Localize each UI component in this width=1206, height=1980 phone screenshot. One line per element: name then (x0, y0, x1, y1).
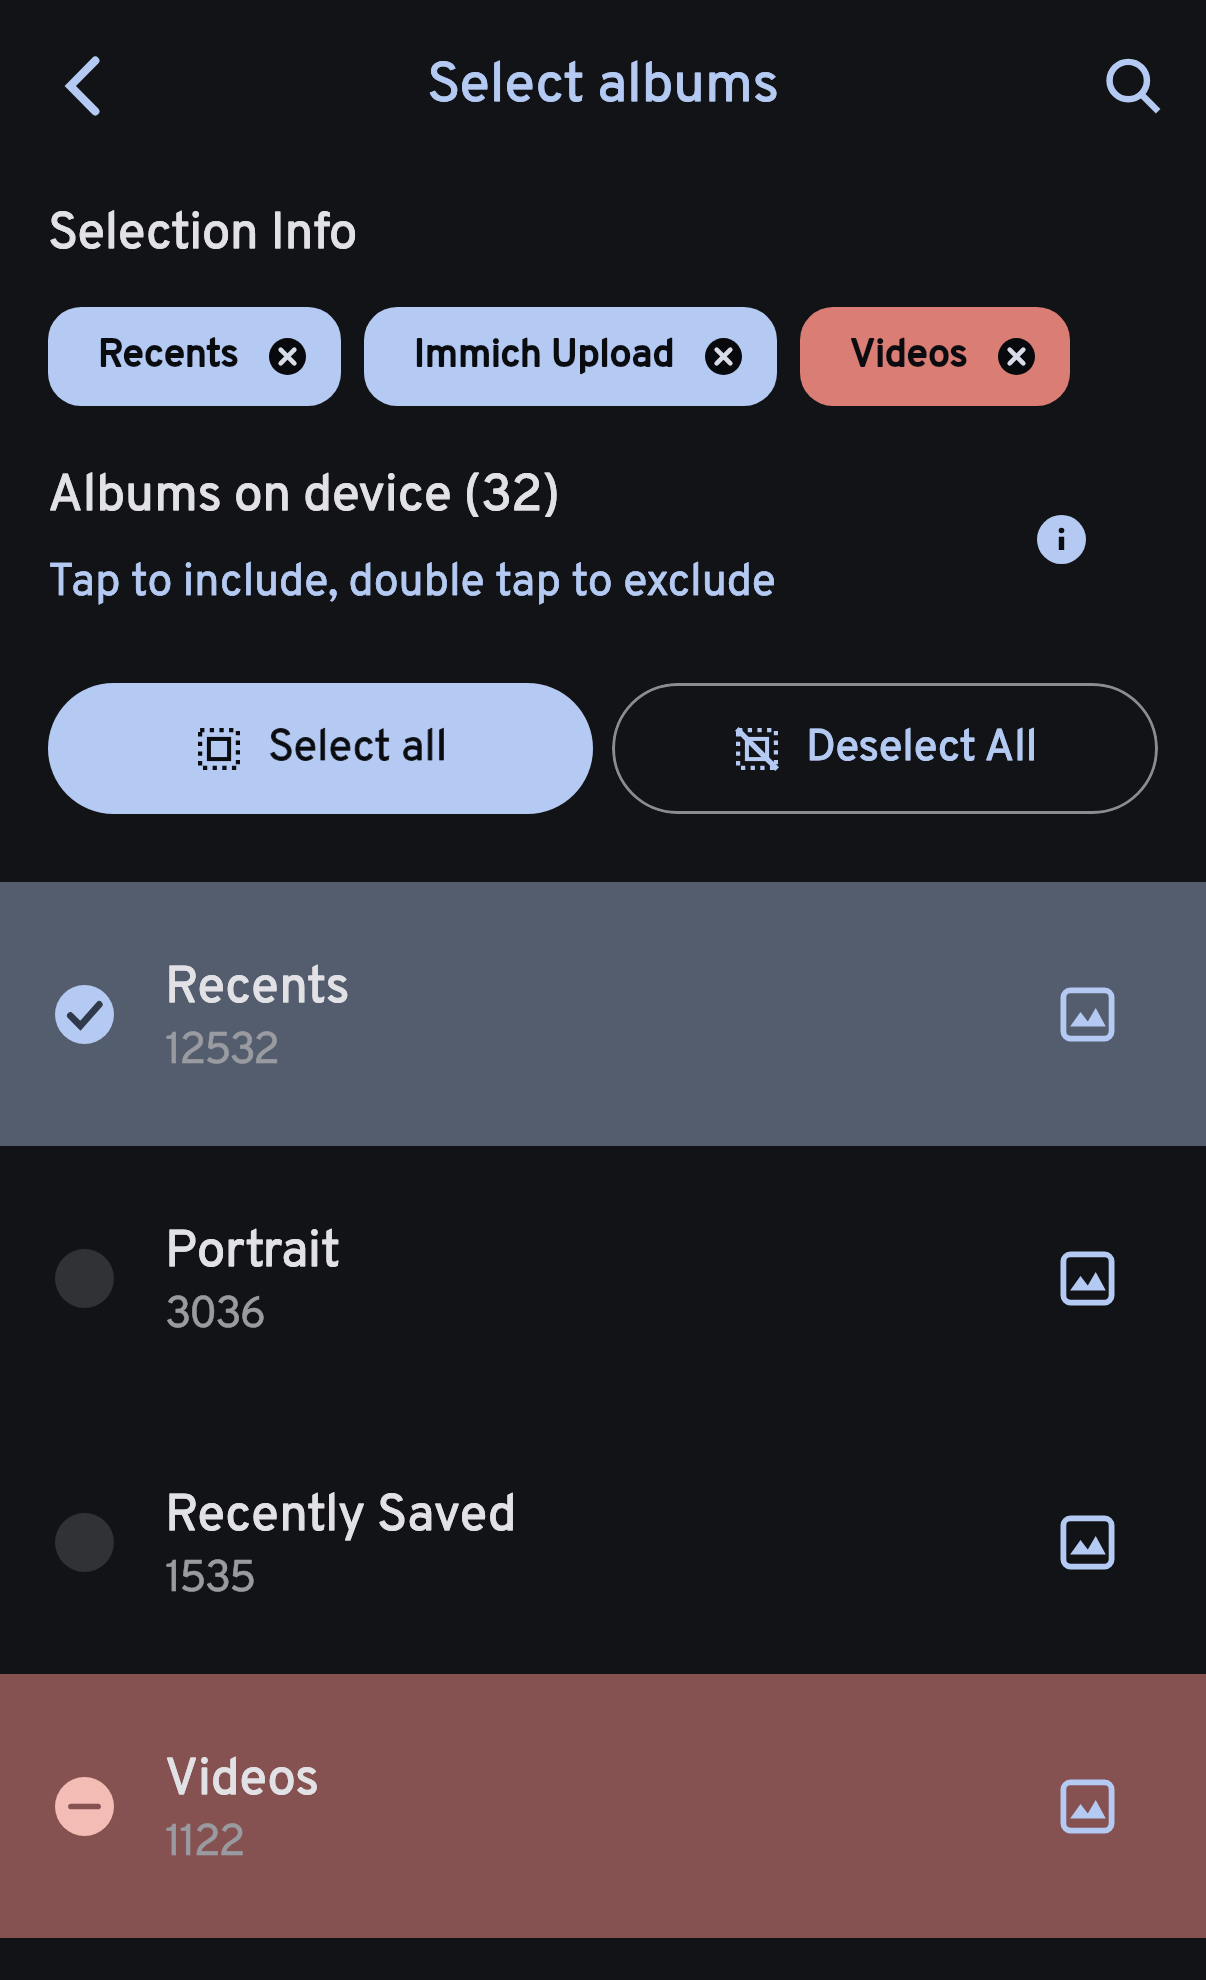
staticText: Recents (165, 957, 350, 1021)
button[interactable]: Recents (0, 882, 1206, 1146)
staticText: Portrait (165, 1221, 341, 1285)
button[interactable]: Videos (800, 307, 1070, 406)
button[interactable]: Select all (48, 683, 593, 814)
staticText: 3036 (165, 1288, 264, 1344)
staticText: Recents (98, 332, 239, 381)
staticText: Select all (268, 721, 448, 776)
staticText: Albums on device (32) (48, 465, 561, 530)
staticText: Videos (165, 1749, 320, 1813)
staticText: Immich Upload (414, 332, 675, 381)
staticText: 1535 (165, 1552, 255, 1608)
button[interactable]: Portrait (0, 1146, 1206, 1410)
button[interactable]: Back (12, 14, 156, 158)
staticText: Deselect All (806, 721, 1038, 776)
staticText: Select albums (427, 51, 780, 122)
staticText: Recents (165, 957, 350, 1021)
staticText: 12532 (165, 1024, 278, 1080)
staticText: 1535 (165, 1552, 255, 1608)
staticText: Videos (850, 332, 968, 381)
button[interactable]: Recently Saved (0, 1410, 1206, 1674)
staticText: Select all (268, 721, 448, 776)
staticText: Deselect All (806, 721, 1038, 776)
staticText: Videos (165, 1749, 320, 1813)
button[interactable]: Deselect All (612, 683, 1158, 814)
button[interactable]: Videos (0, 1674, 1206, 1938)
staticText: Videos (850, 332, 968, 381)
staticText: 3036 (165, 1288, 264, 1344)
staticText: Selection Info (48, 203, 358, 267)
staticText: Recents (98, 332, 239, 381)
button[interactable]: Immich Upload (364, 307, 777, 406)
staticText: Recently Saved (165, 1485, 517, 1549)
staticText: Select albums (427, 51, 780, 122)
staticText: 1122 (165, 1816, 244, 1872)
staticText: Tap to include, double tap to exclude (48, 556, 776, 613)
staticText: Immich Upload (414, 332, 675, 381)
button[interactable]: Information (1001, 479, 1121, 599)
staticText: Albums on device (32) (48, 465, 561, 530)
staticText: 12532 (165, 1024, 278, 1080)
staticText: Tap to include, double tap to exclude (48, 556, 776, 613)
button[interactable]: Search (1061, 14, 1205, 158)
staticText: Portrait (165, 1221, 341, 1285)
staticText: Selection Info (48, 203, 358, 267)
staticText: 1122 (165, 1816, 244, 1872)
staticText: Recently Saved (165, 1485, 517, 1549)
button[interactable]: Recents (48, 307, 341, 406)
